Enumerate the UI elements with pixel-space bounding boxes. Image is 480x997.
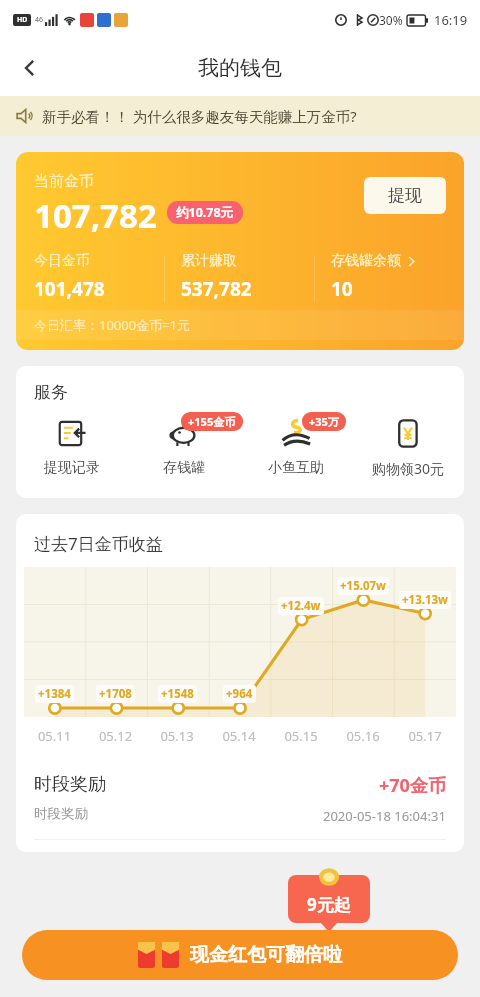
staticText: +15.07w [340, 578, 386, 594]
button[interactable]: 提现记录 [16, 413, 128, 479]
staticText: 101,478 [34, 276, 105, 302]
staticText: 提现 [388, 185, 422, 206]
staticText: 累计赚取 [181, 252, 237, 270]
staticText: +12.4w [281, 598, 321, 614]
staticText: 05.14 [208, 727, 270, 745]
staticText: 今日金币 [34, 252, 90, 270]
staticText: 05.17 [394, 727, 456, 745]
staticText: 新手必看！！ 为什么很多趣友每天能赚上万金币? [42, 106, 357, 126]
staticText: 时段奖励 [34, 805, 88, 822]
staticText: HD [17, 15, 28, 25]
staticText: 05.11 [24, 727, 85, 745]
button[interactable]: 提现 [364, 177, 446, 214]
staticText: 购物领30元 [372, 459, 445, 478]
staticText: +1384 [38, 686, 71, 702]
button[interactable]: 新手必看！！ 为什么很多趣友每天能赚上万金币? [0, 96, 480, 136]
staticText: +70金币 [379, 773, 446, 798]
staticText: 约10.78元 [176, 204, 234, 221]
button[interactable]: Back [8, 46, 52, 90]
staticText: 当前金币 [34, 172, 94, 191]
staticText: 2020-05-18 16:04:31 [323, 807, 446, 825]
staticText: 05.15 [270, 727, 332, 745]
staticText: +1708 [99, 686, 132, 702]
staticText: 存钱罐 [163, 459, 205, 477]
staticText: 现金红包可翻倍啦 [190, 943, 342, 967]
button[interactable]: 当前金币 [16, 152, 464, 350]
button[interactable]: +35万 [240, 413, 352, 479]
staticText: 10 [331, 276, 353, 302]
staticText: 107,782 [34, 193, 157, 238]
button[interactable]: 9元起 [288, 875, 370, 923]
staticText: +155金币 [188, 414, 236, 429]
staticText: 30% [379, 12, 403, 28]
staticText: 提现记录 [44, 459, 100, 477]
staticText: +1548 [161, 686, 194, 702]
button[interactable]: 时段奖励 [16, 773, 464, 825]
staticText: 存钱罐余额 [331, 252, 401, 270]
staticText: +35万 [309, 414, 339, 429]
staticText: 小鱼互助 [268, 459, 324, 477]
staticText: 今日汇率：10000金币=1元 [34, 316, 191, 334]
staticText: 537,782 [181, 276, 252, 302]
staticText: 05.16 [332, 727, 394, 745]
button[interactable]: 购物领30元 [352, 413, 464, 480]
staticText: 时段奖励 [34, 773, 106, 796]
button[interactable]: +155金币 [128, 413, 240, 479]
staticText: 过去7日金币收益 [34, 532, 163, 555]
staticText: +13.13w [402, 592, 448, 608]
staticText: 我的钱包 [198, 55, 282, 81]
staticText: 05.13 [146, 727, 208, 745]
staticText: 服务 [34, 382, 68, 403]
staticText: +964 [226, 686, 253, 702]
staticText: 16:19 [434, 11, 468, 29]
button[interactable]: 现金红包可翻倍啦 [22, 930, 458, 980]
staticText: 9元起 [307, 893, 351, 916]
staticText: 46 [35, 15, 44, 25]
staticText: 05.12 [85, 727, 146, 745]
